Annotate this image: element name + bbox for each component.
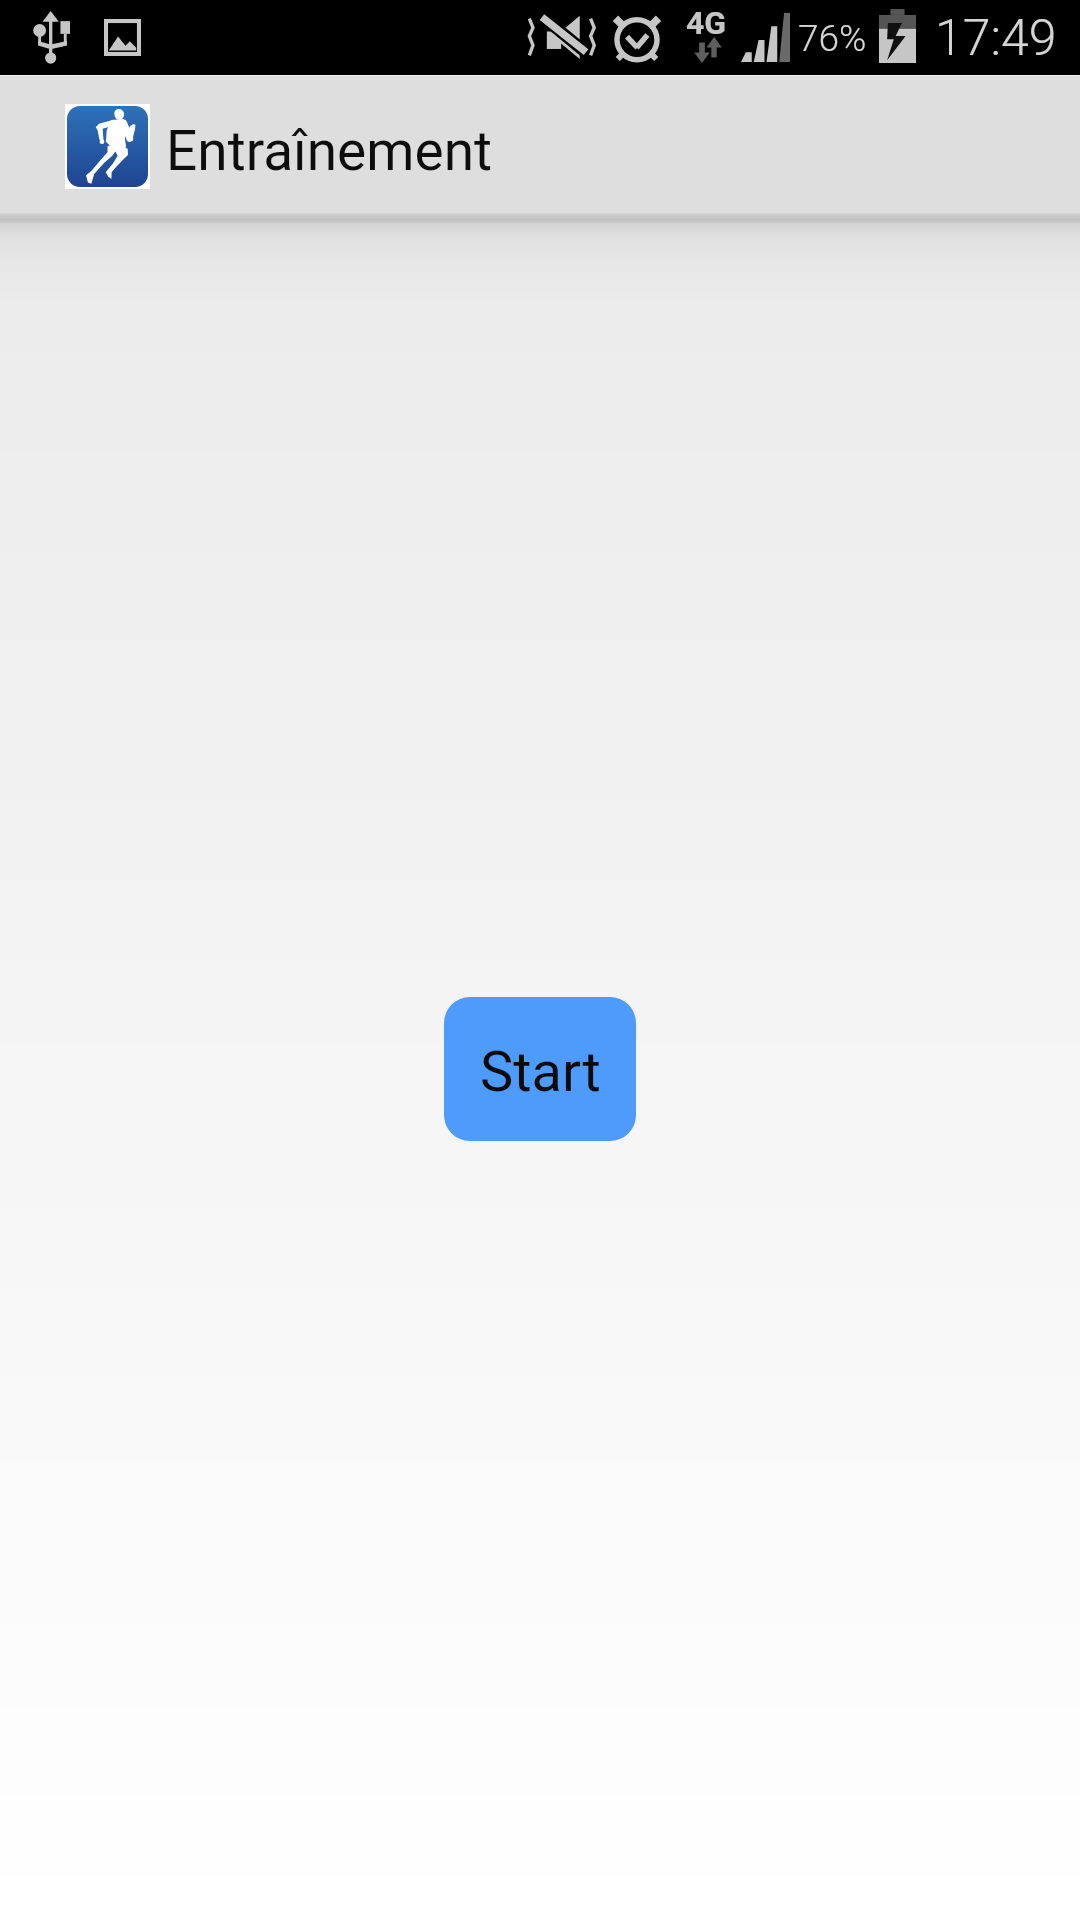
staticText: Entraînement	[166, 119, 493, 183]
button[interactable]: Start	[444, 997, 636, 1141]
staticText: 76%	[798, 17, 867, 60]
other: Status icons	[0, 0, 1080, 75]
staticText: 17:49	[935, 9, 1057, 68]
button[interactable]: Entraînement app icon	[0, 76, 1080, 213]
staticText: 4G	[686, 4, 727, 42]
staticText: Start	[480, 1039, 601, 1105]
other: Entraînement app icon	[67, 106, 148, 187]
